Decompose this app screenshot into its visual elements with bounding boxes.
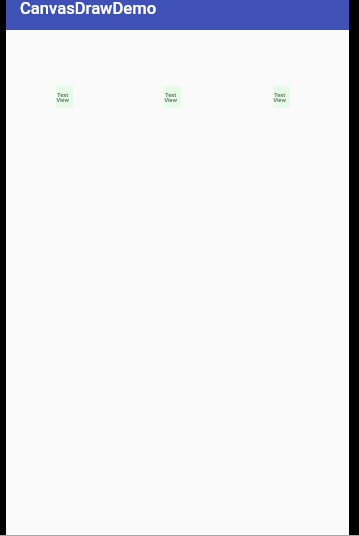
staticText: Text View [56, 91, 69, 103]
button[interactable]: CanvasDrawDemo [6, 0, 349, 30]
button[interactable]: Label Text View [56, 86, 73, 108]
staticText: Text View [164, 91, 177, 103]
button[interactable]: Label Text View [164, 86, 181, 108]
button[interactable]: Label Text View [273, 86, 290, 108]
staticText: CanvasDrawDemo [20, 0, 157, 18]
staticText: Text View [273, 91, 286, 103]
